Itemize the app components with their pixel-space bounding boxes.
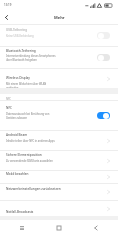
staticText: Mobil bezahlen <box>6 172 29 176</box>
button[interactable]: Zurück <box>81 220 111 235</box>
staticText: Zu verwendende SIM-Karte auswählen <box>6 159 58 163</box>
button[interactable]: Zuletzt verwendet <box>7 220 37 235</box>
button[interactable]: USB-Tethering <box>0 25 118 46</box>
staticText: Datenaustausch bei Berührung von Geräten… <box>6 112 58 120</box>
button[interactable]: Netzwerkeinstellungen zurücksetzen <box>0 184 118 200</box>
button[interactable]: Startseite <box>44 220 74 235</box>
button[interactable]: Wireless Display <box>0 69 118 88</box>
button[interactable]: Umschalten <box>97 32 110 39</box>
staticText: Internetverbindung dieses Smartphones üb… <box>6 54 58 62</box>
staticText: NFC <box>6 106 12 110</box>
button[interactable]: Sichere Elementposition <box>0 151 118 170</box>
staticText: Mit einem Bildschirm über WLAN verbinden <box>6 82 58 90</box>
staticText: Mehr <box>54 15 65 20</box>
button[interactable]: Umschalten <box>97 112 110 119</box>
button[interactable]: Bluetooth-Tethering <box>0 47 118 68</box>
button[interactable]: Notfall-Broadcasts <box>0 201 118 216</box>
staticText: 13:19 <box>4 3 12 7</box>
staticText: Keine USB-Verbindung <box>6 34 58 38</box>
button[interactable]: NFC <box>0 101 118 130</box>
staticText: Netzwerkeinstellungen zurücksetzen <box>6 187 61 191</box>
staticText: Bluetooth-Tethering <box>6 49 36 53</box>
staticText: NFC <box>6 97 11 101</box>
staticText: Notfall-Broadcasts <box>6 210 34 214</box>
staticText: Wireless Display <box>6 76 30 80</box>
staticText: Sichere Elementposition <box>6 153 42 157</box>
button[interactable]: Umschalten <box>97 54 110 61</box>
staticText: Inhalte teilen über NFC in anderen Apps <box>6 139 58 143</box>
staticText: USB-Tethering <box>6 28 28 32</box>
staticText: Android Beam <box>6 133 28 137</box>
button[interactable]: Mobil bezahlen <box>0 171 118 183</box>
button[interactable]: Zurück <box>0 11 13 24</box>
button[interactable]: Android Beam <box>0 131 118 150</box>
